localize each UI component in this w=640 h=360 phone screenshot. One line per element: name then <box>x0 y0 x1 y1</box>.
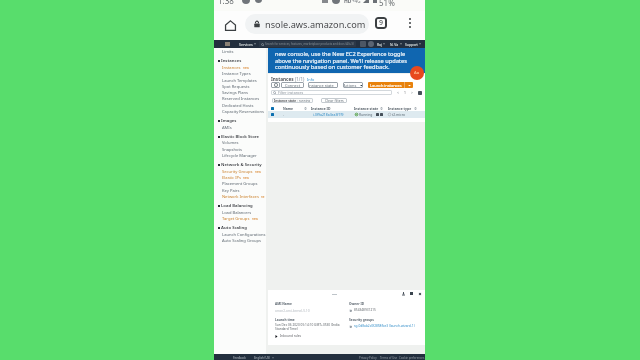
staticText: Lifecycle Manager <box>222 153 257 159</box>
staticText: Auto Scaling Groups <box>222 238 261 244</box>
staticText: Connect <box>285 83 301 88</box>
staticText: Launch instances <box>370 83 402 88</box>
button[interactable]: Auto Scaling Groups <box>214 237 266 244</box>
button[interactable]: Limits <box>214 48 266 55</box>
button[interactable]: Snapshots <box>214 146 266 153</box>
button[interactable]: < <box>397 90 399 95</box>
button[interactable]: Savings Plans <box>214 89 266 96</box>
staticText: new <box>252 217 258 221</box>
staticText: Instance type <box>388 106 412 111</box>
button[interactable]: Auto Scaling <box>214 224 266 231</box>
staticText: amzn2-ami-kernel-5.10 <box>275 309 310 313</box>
button[interactable]: Filter instances <box>271 90 392 95</box>
staticText: Limits <box>222 49 234 55</box>
button[interactable]: Clear filters <box>321 98 347 103</box>
button[interactable]: Raj <box>377 40 385 48</box>
button[interactable]: Network & Security <box>214 161 266 168</box>
button[interactable]: nsole.aws.amazon.com <box>245 14 369 34</box>
button[interactable]: Cookie preferences <box>399 354 425 360</box>
button[interactable]: Images <box>214 117 266 124</box>
button[interactable]: Volumes <box>214 139 266 146</box>
button[interactable]: English (US) <box>254 354 274 360</box>
button[interactable]: - <box>268 111 425 118</box>
button[interactable]: Support <box>405 40 421 48</box>
button[interactable]: Launch instances <box>368 82 413 88</box>
button[interactable]: Launch Templates <box>214 77 266 84</box>
staticText: Aa <box>414 70 420 76</box>
staticText: AMIs <box>222 125 232 131</box>
button[interactable] <box>271 82 280 88</box>
button[interactable]: Dedicated Hosts <box>214 102 266 109</box>
button[interactable]: More options <box>401 14 419 32</box>
button[interactable]: CloudShell <box>360 41 366 47</box>
button[interactable]: AMIs <box>214 124 266 131</box>
staticText: Elastic Block Store <box>221 134 260 140</box>
staticText: - <box>283 112 285 117</box>
button[interactable]: Open support chat <box>410 66 424 80</box>
button[interactable]: Security Groups <box>214 168 266 175</box>
staticText: nsole.aws.amazon.com <box>265 18 366 31</box>
button[interactable]: Preferences <box>418 91 422 95</box>
button[interactable]: Notifications <box>368 41 374 47</box>
staticText: above the navigation panel. We'll releas… <box>275 57 407 65</box>
staticText: Instance state <box>354 106 379 111</box>
button[interactable]: Services <box>239 40 256 48</box>
button[interactable]: Download <box>401 291 406 296</box>
button[interactable]: Instances <box>214 57 266 64</box>
button[interactable]: Load Balancers <box>214 209 266 216</box>
button[interactable]: Instance state <box>272 98 313 103</box>
button[interactable]: Connect <box>281 82 304 88</box>
staticText: +4G <box>352 0 361 4</box>
button[interactable]: sg-0d8ab2c0f2858fbe3 (launch-wizard-1) <box>349 324 415 328</box>
button[interactable]: Terms of Use <box>380 354 398 360</box>
button[interactable]: Instance state <box>308 82 338 88</box>
button[interactable]: Key Pairs <box>214 187 266 194</box>
staticText: Running <box>359 112 373 117</box>
staticText: Security groups <box>349 318 374 322</box>
button[interactable]: Network Interfaces <box>214 193 266 200</box>
button[interactable]: Name <box>268 105 425 111</box>
button[interactable]: Privacy Policy <box>359 354 377 360</box>
button[interactable]: Lifecycle Manager <box>214 152 266 159</box>
staticText: Savings Plans <box>222 90 249 96</box>
staticText: Network & Security <box>221 162 262 168</box>
staticText: : running <box>297 99 311 103</box>
staticText: (1/1) <box>295 76 305 82</box>
staticText: Images <box>221 118 237 124</box>
button[interactable]: Placement Groups <box>214 180 266 187</box>
staticText: Sun Dec 06 2020 05:14:10 GMT+0530 (India <box>275 323 340 327</box>
button[interactable]: Reserved Instances <box>214 95 266 102</box>
button[interactable]: Elastic IPs <box>214 174 266 181</box>
button[interactable]: Switch tabs, 9 open <box>372 14 390 32</box>
staticText: Search for services, features, marketpla… <box>265 42 354 46</box>
staticText: Snapshots <box>222 147 242 153</box>
staticText: Services <box>239 42 253 47</box>
button[interactable]: Elastic Block Store <box>214 133 266 140</box>
button[interactable]: Actions <box>343 82 363 88</box>
button[interactable]: Instances <box>214 64 266 71</box>
button[interactable]: > <box>411 90 413 95</box>
button[interactable]: Close panel <box>417 291 422 296</box>
button[interactable]: Launch Configurations <box>214 231 266 238</box>
button[interactable]: Inbound rules <box>275 334 302 338</box>
staticText: Reserved Instances <box>222 96 260 102</box>
staticText: Instances <box>271 76 294 82</box>
button[interactable]: Target Groups <box>214 215 266 222</box>
button[interactable]: 1 <box>404 90 406 95</box>
staticText: Privacy Policy <box>359 356 377 360</box>
button[interactable]: Load Balancing <box>214 202 266 209</box>
button[interactable]: Capacity Reservations <box>214 108 266 115</box>
staticText: HD <box>344 0 352 5</box>
staticText: Volumes <box>222 140 239 146</box>
button[interactable]: Instance Types <box>214 70 266 77</box>
button[interactable]: Search for services, features, marketpla… <box>259 41 356 47</box>
button[interactable]: Spot Requests <box>214 83 266 90</box>
staticText: Instances <box>221 58 242 64</box>
button[interactable]: Feedback <box>233 354 246 360</box>
button[interactable]: Expand <box>409 291 414 296</box>
button[interactable]: N. Va <box>390 40 402 48</box>
staticText: Target Groups <box>222 216 250 222</box>
staticText: new <box>261 195 266 199</box>
button[interactable]: Home <box>222 17 238 33</box>
